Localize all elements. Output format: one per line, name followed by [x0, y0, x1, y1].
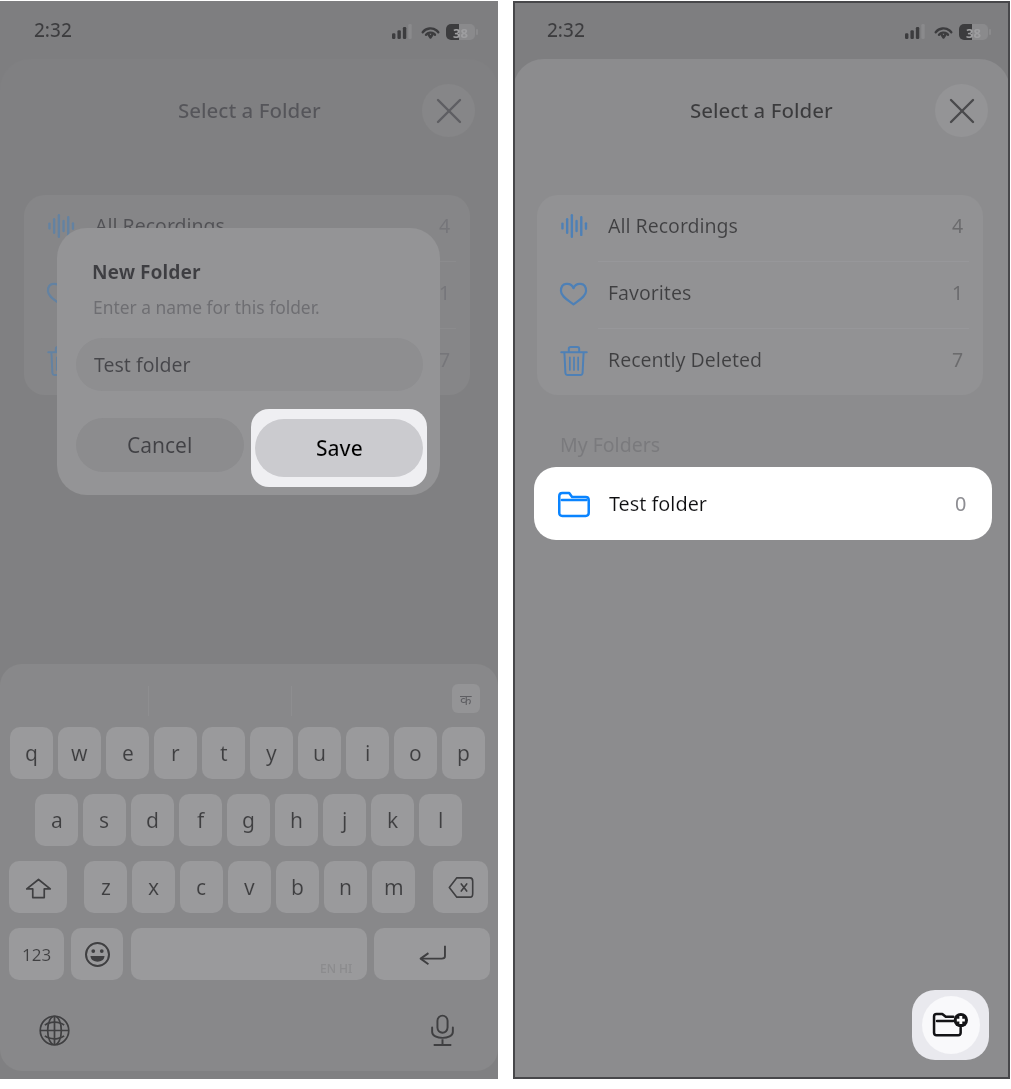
- staticText: s: [99, 806, 110, 835]
- button[interactable]: Emoji: [71, 928, 123, 980]
- staticText: o: [409, 739, 422, 768]
- button[interactable]: g: [227, 794, 270, 846]
- staticText: i: [365, 739, 371, 768]
- button[interactable]: Shift: [9, 861, 67, 913]
- button[interactable]: h: [275, 794, 318, 846]
- staticText: p: [457, 739, 470, 768]
- staticText: Favorites: [95, 279, 179, 306]
- staticText: n: [339, 873, 352, 902]
- button[interactable]: w: [58, 727, 101, 779]
- button[interactable]: s: [83, 794, 126, 846]
- staticText: e: [122, 739, 134, 768]
- button[interactable]: k: [371, 794, 414, 846]
- button[interactable]: d: [131, 794, 174, 846]
- staticText: Cancel: [127, 431, 193, 460]
- button[interactable]: n: [324, 861, 367, 913]
- staticText: Favorites: [608, 279, 692, 306]
- button[interactable]: a: [35, 794, 78, 846]
- staticText: g: [242, 806, 255, 835]
- button[interactable]: i: [346, 727, 389, 779]
- button[interactable]: b: [276, 861, 319, 913]
- staticText: New Folder: [92, 258, 201, 284]
- staticText: l: [438, 806, 444, 835]
- button[interactable]: Cancel: [76, 418, 244, 472]
- staticText: z: [101, 873, 111, 902]
- staticText: w: [71, 739, 88, 768]
- staticText: All Recordings: [95, 212, 225, 239]
- staticText: 1: [439, 279, 451, 306]
- staticText: EN HI: [320, 960, 353, 976]
- staticText: x: [148, 873, 160, 902]
- button[interactable]: m: [372, 861, 415, 913]
- staticText: d: [146, 806, 159, 835]
- staticText: Save: [316, 434, 363, 463]
- button[interactable]: p: [442, 727, 485, 779]
- staticText: u: [313, 739, 326, 768]
- button[interactable]: c: [180, 861, 223, 913]
- staticText: 0: [955, 490, 967, 517]
- button[interactable]: Backspace: [433, 861, 488, 913]
- staticText: 4: [952, 212, 964, 239]
- staticText: 7: [952, 346, 964, 373]
- staticText: Select a Folder: [178, 96, 321, 124]
- button[interactable]: q: [10, 727, 53, 779]
- staticText: 1: [952, 279, 964, 306]
- button[interactable]: e: [106, 727, 149, 779]
- staticText: c: [196, 873, 207, 902]
- staticText: h: [290, 806, 303, 835]
- button[interactable]: Save: [251, 409, 427, 487]
- button[interactable]: Test folder: [534, 467, 992, 540]
- button[interactable]: Enter: [374, 928, 490, 980]
- staticText: 2:32: [34, 17, 72, 43]
- staticText: Recently Deleted: [608, 346, 762, 373]
- button[interactable]: All Recordings: [537, 195, 983, 261]
- button[interactable]: Voice input: [420, 1008, 464, 1052]
- button[interactable]: Favorites: [537, 262, 983, 328]
- button[interactable]: Close: [422, 84, 475, 137]
- staticText: Enter a name for this folder.: [93, 295, 320, 319]
- button[interactable]: All Recordings: [24, 195, 470, 261]
- button[interactable]: New folder: [912, 990, 989, 1060]
- button[interactable]: Recently Deleted: [24, 329, 470, 395]
- button[interactable]: r: [154, 727, 197, 779]
- button[interactable]: Recently Deleted: [537, 329, 983, 395]
- staticText: t: [220, 739, 228, 768]
- staticText: 2:32: [547, 17, 585, 43]
- button[interactable]: v: [228, 861, 271, 913]
- staticText: 38: [453, 24, 468, 40]
- staticText: 4: [439, 212, 451, 239]
- button[interactable]: f: [179, 794, 222, 846]
- staticText: q: [25, 739, 38, 768]
- button[interactable]: u: [298, 727, 341, 779]
- button[interactable]: Change language: [32, 1008, 76, 1052]
- staticText: My Folders: [560, 431, 661, 458]
- staticText: f: [197, 806, 205, 835]
- button[interactable]: j: [323, 794, 366, 846]
- staticText: Test folder: [609, 490, 707, 517]
- button[interactable]: t: [202, 727, 245, 779]
- staticText: 38: [966, 24, 981, 40]
- staticText: Select a Folder: [690, 96, 833, 124]
- staticText: b: [291, 873, 304, 902]
- staticText: 123: [22, 943, 52, 966]
- button[interactable]: x: [132, 861, 175, 913]
- staticText: k: [387, 806, 399, 835]
- button[interactable]: Close: [935, 84, 988, 137]
- button[interactable]: l: [419, 794, 462, 846]
- staticText: m: [384, 873, 404, 902]
- button[interactable]: o: [394, 727, 437, 779]
- staticText: Test folder: [94, 351, 191, 378]
- staticText: y: [266, 739, 277, 768]
- staticText: Recently Deleted: [95, 346, 249, 373]
- staticText: j: [342, 806, 348, 835]
- staticText: r: [171, 739, 180, 768]
- button[interactable]: z: [84, 861, 127, 913]
- button[interactable]: Numbers: [9, 928, 64, 980]
- button[interactable]: Favorites: [24, 262, 470, 328]
- staticText: a: [51, 806, 63, 835]
- staticText: All Recordings: [608, 212, 738, 239]
- staticText: v: [244, 873, 255, 902]
- button[interactable]: y: [250, 727, 293, 779]
- staticText: 7: [439, 346, 451, 373]
